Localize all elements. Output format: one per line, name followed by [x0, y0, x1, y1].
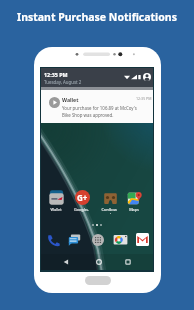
staticText: Wallet [62, 96, 79, 103]
staticText: Cardboard [101, 207, 117, 214]
staticText: Google+ [74, 207, 89, 212]
staticText: Bike Shop was approved. [62, 112, 114, 118]
staticText: Instant Purchase Notifications [17, 10, 177, 24]
button[interactable]: Home [93, 254, 105, 270]
button[interactable]: Wallet [41, 90, 153, 123]
button[interactable]: Back [60, 254, 72, 270]
button[interactable]: Account [143, 73, 151, 81]
button[interactable]: G+ [74, 190, 90, 214]
button[interactable]: Gmail [135, 232, 150, 247]
staticText: 12:35 PM [44, 71, 68, 78]
staticText: Tuesday, August 2 [44, 79, 82, 85]
button[interactable]: Wallet [48, 190, 64, 214]
staticText: Your purchase for 106.89 at McCoy's [62, 105, 137, 111]
staticText: Maps [129, 207, 139, 212]
button[interactable]: Camera [113, 232, 128, 247]
button[interactable]: Cardboard [101, 190, 117, 214]
staticText: Wallet [50, 207, 62, 212]
button[interactable]: All apps [90, 232, 105, 247]
staticText: 12:35 PM [136, 96, 152, 101]
staticText: G+ [77, 192, 88, 203]
button[interactable]: Messages [67, 232, 82, 247]
button[interactable]: Maps [126, 190, 142, 214]
button[interactable]: Recents [122, 254, 134, 270]
button[interactable]: Phone [46, 232, 61, 247]
